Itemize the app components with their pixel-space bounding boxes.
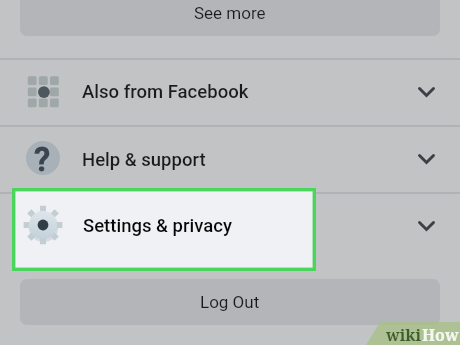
staticText: How <box>422 324 459 345</box>
button[interactable]: Help & support <box>0 126 460 192</box>
staticText: ? <box>34 140 51 179</box>
button[interactable]: See more <box>20 0 440 36</box>
staticText: wiki <box>386 324 422 345</box>
staticText: See more <box>194 3 266 23</box>
staticText: Log Out <box>200 292 260 312</box>
staticText: Settings & privacy <box>82 218 231 240</box>
button[interactable]: Settings & privacy <box>12 188 316 271</box>
staticText: Help & support <box>82 149 206 171</box>
button[interactable]: Settings & privacy <box>0 193 460 279</box>
button[interactable]: Also from Facebook <box>0 59 460 125</box>
staticText: Also from Facebook <box>82 81 249 103</box>
button[interactable]: Log Out <box>20 279 440 325</box>
staticText: Settings & privacy <box>83 215 232 237</box>
